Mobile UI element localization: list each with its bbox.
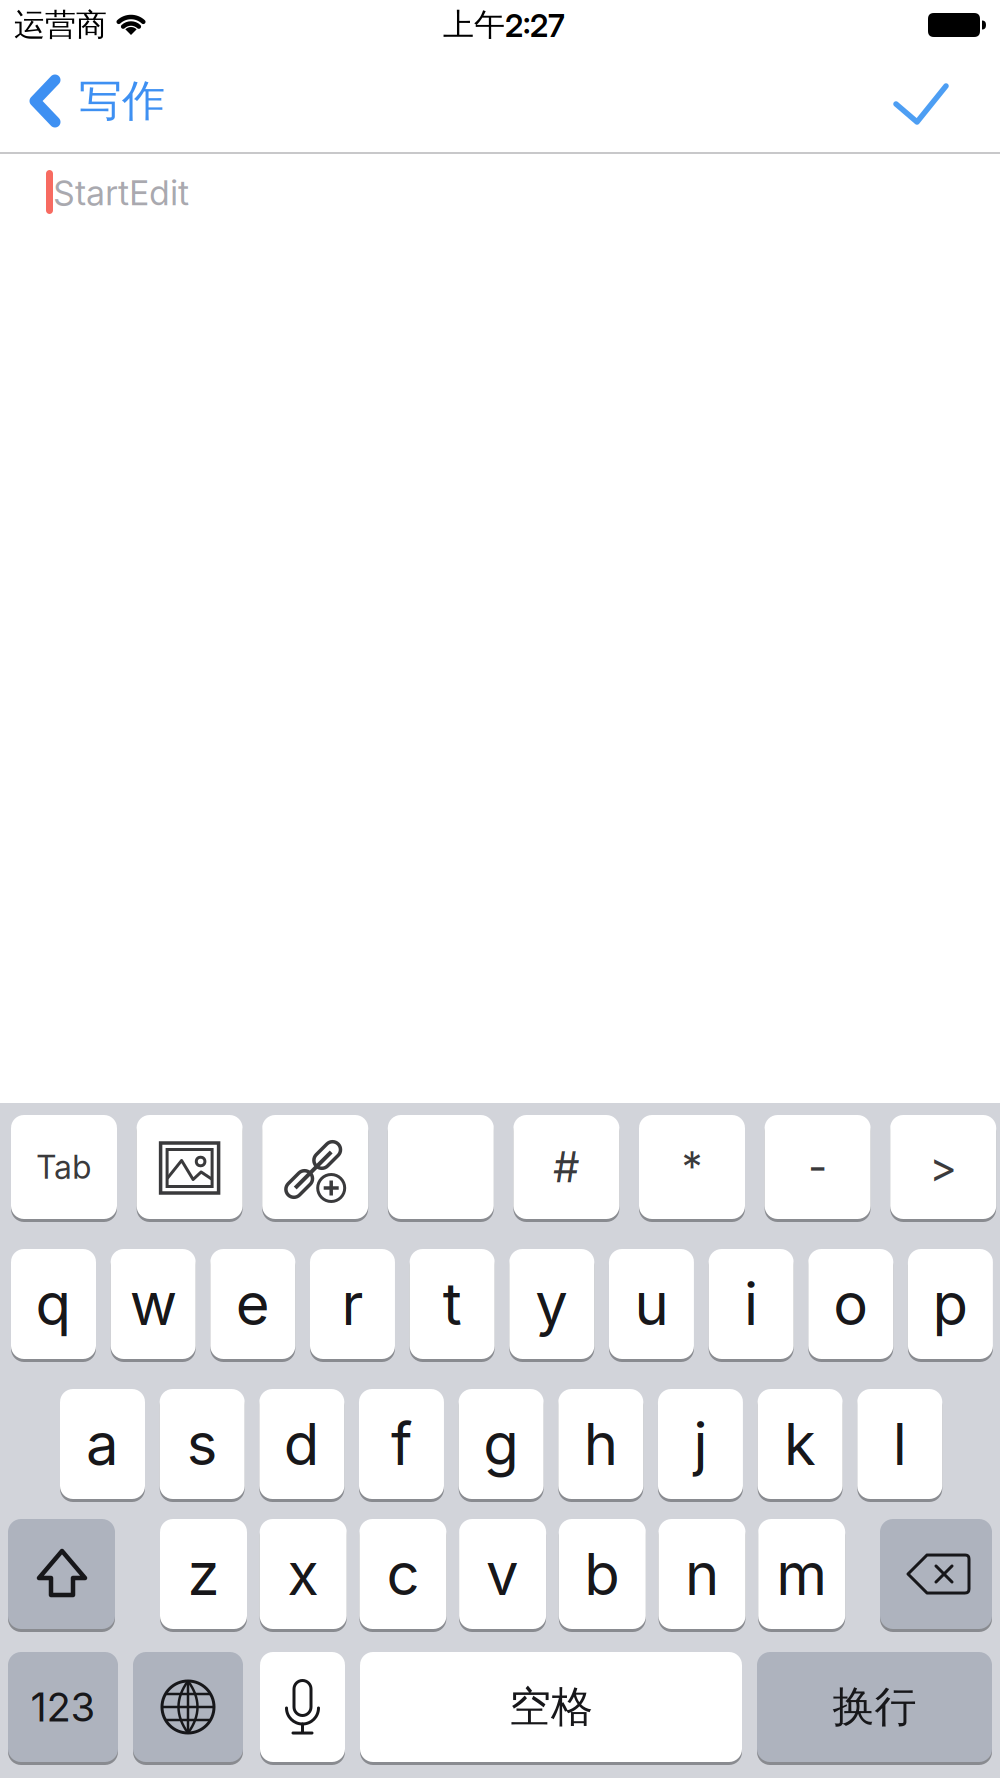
staticText: c xyxy=(386,1540,419,1608)
staticText: v xyxy=(486,1540,519,1608)
button[interactable]: j xyxy=(658,1389,743,1499)
button[interactable]: l xyxy=(857,1389,942,1499)
staticText: StartEdit xyxy=(53,173,189,213)
staticText: 运营商 xyxy=(14,6,107,44)
staticText: 123 xyxy=(30,1683,95,1731)
button[interactable]: 下一个键盘 xyxy=(133,1652,243,1762)
staticText: y xyxy=(535,1270,568,1338)
button[interactable]: x xyxy=(260,1519,347,1629)
button[interactable]: n xyxy=(658,1519,745,1629)
button[interactable]: z xyxy=(160,1519,247,1629)
button[interactable]: p xyxy=(908,1249,993,1359)
button[interactable]: 删除 xyxy=(880,1519,992,1629)
staticText: q xyxy=(35,1270,71,1338)
staticText: t xyxy=(443,1270,462,1338)
staticText: f xyxy=(391,1410,412,1478)
button[interactable]: 插入链接 xyxy=(262,1115,368,1219)
staticText: l xyxy=(893,1410,907,1478)
button[interactable]: 插入图片 xyxy=(137,1115,243,1219)
button[interactable]: - xyxy=(765,1115,871,1219)
button[interactable]: r xyxy=(310,1249,395,1359)
staticText: w xyxy=(130,1270,177,1338)
staticText: a xyxy=(86,1410,119,1478)
staticText: Tab xyxy=(36,1148,92,1186)
button[interactable]: k xyxy=(758,1389,843,1499)
staticText: > xyxy=(929,1142,957,1192)
staticText: d xyxy=(284,1410,320,1478)
button[interactable]: b xyxy=(559,1519,646,1629)
staticText: e xyxy=(236,1270,270,1338)
staticText: z xyxy=(187,1540,219,1608)
button[interactable]: 空格 xyxy=(360,1652,742,1762)
button[interactable]: c xyxy=(359,1519,446,1629)
button[interactable]: m xyxy=(758,1519,845,1629)
button[interactable]: Tab xyxy=(11,1115,117,1219)
staticText: u xyxy=(634,1270,668,1338)
button[interactable]: * xyxy=(639,1115,745,1219)
staticText: n xyxy=(685,1540,719,1608)
button[interactable]: i xyxy=(709,1249,794,1359)
staticText: k xyxy=(784,1410,816,1478)
button[interactable]: g xyxy=(459,1389,544,1499)
button[interactable]: q xyxy=(11,1249,96,1359)
staticText: 换行 xyxy=(832,1681,916,1733)
staticText: 空格 xyxy=(509,1681,593,1733)
button[interactable]: 完成 xyxy=(894,83,948,125)
staticText: b xyxy=(584,1540,620,1608)
staticText: x xyxy=(287,1540,319,1608)
staticText: s xyxy=(187,1410,218,1478)
staticText: j xyxy=(693,1410,707,1478)
staticText: * xyxy=(681,1142,702,1192)
button[interactable]: 换行 xyxy=(757,1652,992,1762)
staticText: g xyxy=(483,1410,519,1478)
staticText: 上午2:27 xyxy=(443,6,565,44)
button[interactable]: a xyxy=(60,1389,145,1499)
button[interactable]: v xyxy=(459,1519,546,1629)
button[interactable]: u xyxy=(609,1249,694,1359)
button[interactable]: o xyxy=(808,1249,893,1359)
staticText: o xyxy=(833,1270,868,1338)
button[interactable]: 空白 xyxy=(388,1115,494,1219)
button[interactable]: > xyxy=(890,1115,996,1219)
button[interactable]: Shift xyxy=(8,1519,115,1629)
button[interactable]: # xyxy=(513,1115,619,1219)
button[interactable]: 123 xyxy=(8,1652,118,1762)
button[interactable]: h xyxy=(558,1389,643,1499)
button[interactable]: f xyxy=(359,1389,444,1499)
button[interactable]: 返回 写作 xyxy=(29,51,165,151)
button[interactable]: 听写 xyxy=(260,1652,345,1762)
staticText: m xyxy=(776,1540,827,1608)
staticText: # xyxy=(553,1142,580,1192)
button[interactable]: d xyxy=(259,1389,344,1499)
button[interactable]: w xyxy=(111,1249,196,1359)
staticText: p xyxy=(932,1270,968,1338)
button[interactable]: t xyxy=(410,1249,495,1359)
staticText: i xyxy=(744,1270,758,1338)
button[interactable]: s xyxy=(160,1389,245,1499)
staticText: 写作 xyxy=(79,75,165,127)
staticText: h xyxy=(584,1410,618,1478)
button[interactable]: y xyxy=(509,1249,594,1359)
staticText: - xyxy=(808,1142,827,1192)
button[interactable]: e xyxy=(210,1249,295,1359)
staticText: r xyxy=(341,1270,363,1338)
